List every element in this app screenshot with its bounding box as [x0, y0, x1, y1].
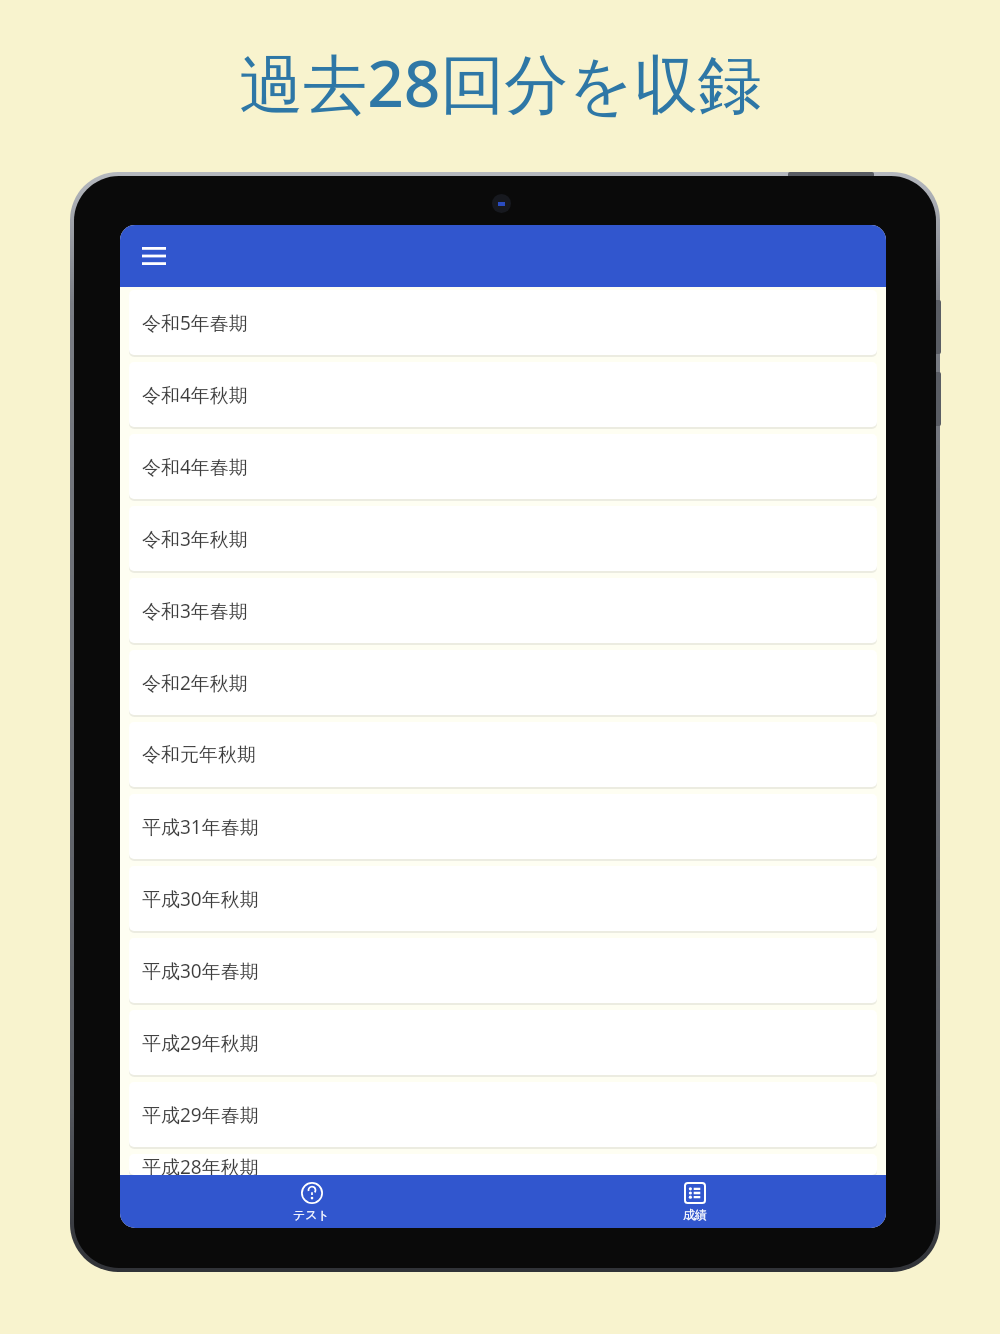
staticText: 令和4年春期	[142, 454, 248, 480]
button[interactable]: 令和5年春期	[129, 290, 877, 355]
button[interactable]: 令和3年秋期	[129, 506, 877, 571]
staticText: テスト	[293, 1207, 330, 1222]
staticText: 成績	[683, 1207, 707, 1222]
button[interactable]: 平成31年春期	[129, 794, 877, 859]
staticText: 令和元年秋期	[142, 743, 256, 767]
button[interactable]: 令和元年秋期	[129, 722, 877, 787]
staticText: 令和3年春期	[142, 598, 248, 624]
staticText: 令和2年秋期	[142, 670, 248, 696]
staticText: 平成31年春期	[142, 814, 259, 840]
staticText: 平成30年春期	[142, 958, 259, 984]
staticText: 令和5年春期	[142, 310, 248, 336]
staticText: 平成29年春期	[142, 1102, 259, 1128]
staticText: 平成29年秋期	[142, 1030, 259, 1056]
staticText: 平成28年秋期	[142, 1154, 259, 1175]
staticText: 令和3年秋期	[142, 526, 248, 552]
button[interactable]: 平成28年秋期	[129, 1154, 877, 1175]
button[interactable]: Menu	[120, 225, 886, 287]
button[interactable]: 令和4年春期	[129, 434, 877, 499]
button[interactable]: 成績	[503, 1175, 886, 1228]
staticText: 平成30年秋期	[142, 886, 259, 912]
button[interactable]: 令和4年秋期	[129, 362, 877, 427]
button[interactable]: テスト	[120, 1175, 503, 1228]
button[interactable]: 令和3年春期	[129, 578, 877, 643]
button[interactable]: 平成30年春期	[129, 938, 877, 1003]
staticText: 令和4年秋期	[142, 382, 248, 408]
staticText: 過去28回分を収録	[239, 39, 762, 126]
button[interactable]: Menu	[132, 234, 176, 278]
button[interactable]: 平成30年秋期	[129, 866, 877, 931]
button[interactable]: 令和2年秋期	[129, 650, 877, 715]
button[interactable]: 平成29年春期	[129, 1082, 877, 1147]
button[interactable]: 平成29年秋期	[129, 1010, 877, 1075]
